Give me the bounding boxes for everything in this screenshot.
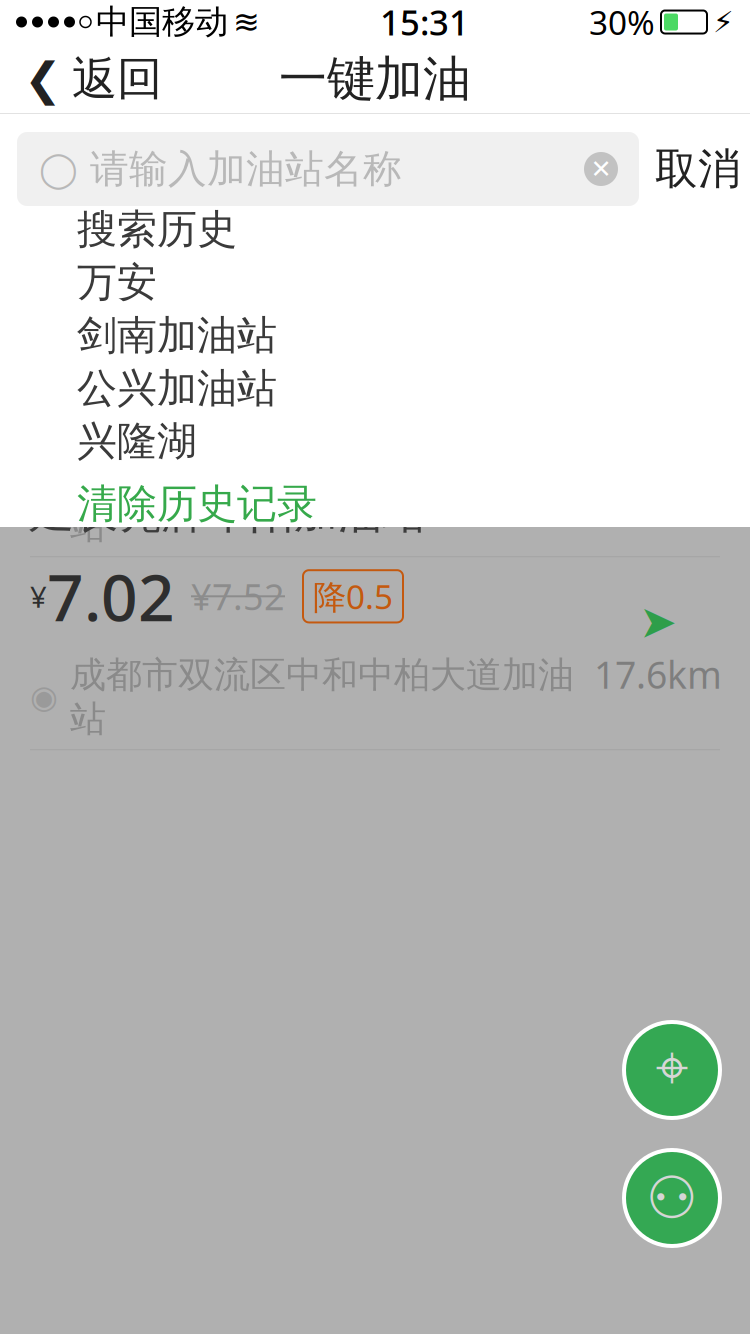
staticText: ¥ <box>30 191 47 230</box>
staticText: ¥7.52 <box>191 572 285 620</box>
staticText: 成都市双流区中和中柏大道加油站 <box>70 267 574 355</box>
staticText: ➤ <box>639 596 677 647</box>
button[interactable]: ❮ <box>0 44 186 114</box>
staticText: ❮ <box>24 53 62 105</box>
staticText: 7.02 <box>47 361 175 446</box>
staticText: ◉ <box>30 679 58 715</box>
staticText: 中石化加油站 <box>30 100 294 154</box>
button[interactable]: 兴隆湖 <box>0 415 750 468</box>
staticText: ⌖ <box>655 1041 688 1099</box>
staticText: ◯ <box>39 149 78 189</box>
staticText: 取消 <box>655 143 741 195</box>
staticText: 清除历史记录 <box>77 479 317 528</box>
staticText: 15:31 <box>380 0 469 45</box>
staticText: 7.02 <box>47 554 175 639</box>
staticText: 降0.5 <box>313 574 393 618</box>
staticText: 请输入加油站名称 <box>90 145 402 193</box>
staticText: 延长壳牌华阳加油站 <box>30 293 426 347</box>
staticText: 17.6km <box>594 649 722 699</box>
staticText: 延长壳牌华阳加油站 <box>30 486 426 540</box>
staticText: 剑南加油站 <box>77 311 277 360</box>
staticText: 暂停营业 <box>312 107 440 146</box>
staticText: 返回 <box>72 51 162 107</box>
button[interactable]: 清除 <box>573 141 629 197</box>
staticText: 成都市双流区中和中柏大道加油站 <box>70 653 574 741</box>
staticText: 搜索历史 <box>77 205 237 254</box>
staticText: 30% <box>589 0 655 44</box>
staticText: ¥ <box>30 577 47 616</box>
button[interactable]: 清除历史记录 <box>0 468 750 540</box>
button[interactable]: 万安 <box>0 256 750 309</box>
staticText: 降0.5 <box>313 188 393 232</box>
button[interactable]: 搜索历史 <box>0 203 750 256</box>
staticText: 一键加油 <box>279 49 471 108</box>
button[interactable]: 取消 <box>639 132 750 206</box>
button[interactable]: 公兴加油站 <box>0 362 750 415</box>
staticText: ¥7.52 <box>191 379 285 427</box>
staticText: 成都市双流区中和中柏大道加油站 <box>70 460 574 548</box>
staticText: ✕ <box>590 155 611 183</box>
staticText: ⚇ <box>645 1165 698 1231</box>
staticText: 中国移动 <box>96 1 228 42</box>
button[interactable]: 剑南加油站 <box>0 309 750 362</box>
staticText: ≋ <box>233 4 260 40</box>
staticText: 万安 <box>77 258 157 307</box>
staticText: ⚡︎ <box>713 5 734 39</box>
button[interactable]: 我的 <box>622 1148 722 1248</box>
staticText: 7.02 <box>47 168 175 253</box>
button[interactable]: 地图 <box>622 1020 722 1120</box>
staticText: 兴隆湖 <box>77 417 197 466</box>
staticText: ¥7.52 <box>191 186 285 234</box>
staticText: 公兴加油站 <box>77 364 277 413</box>
